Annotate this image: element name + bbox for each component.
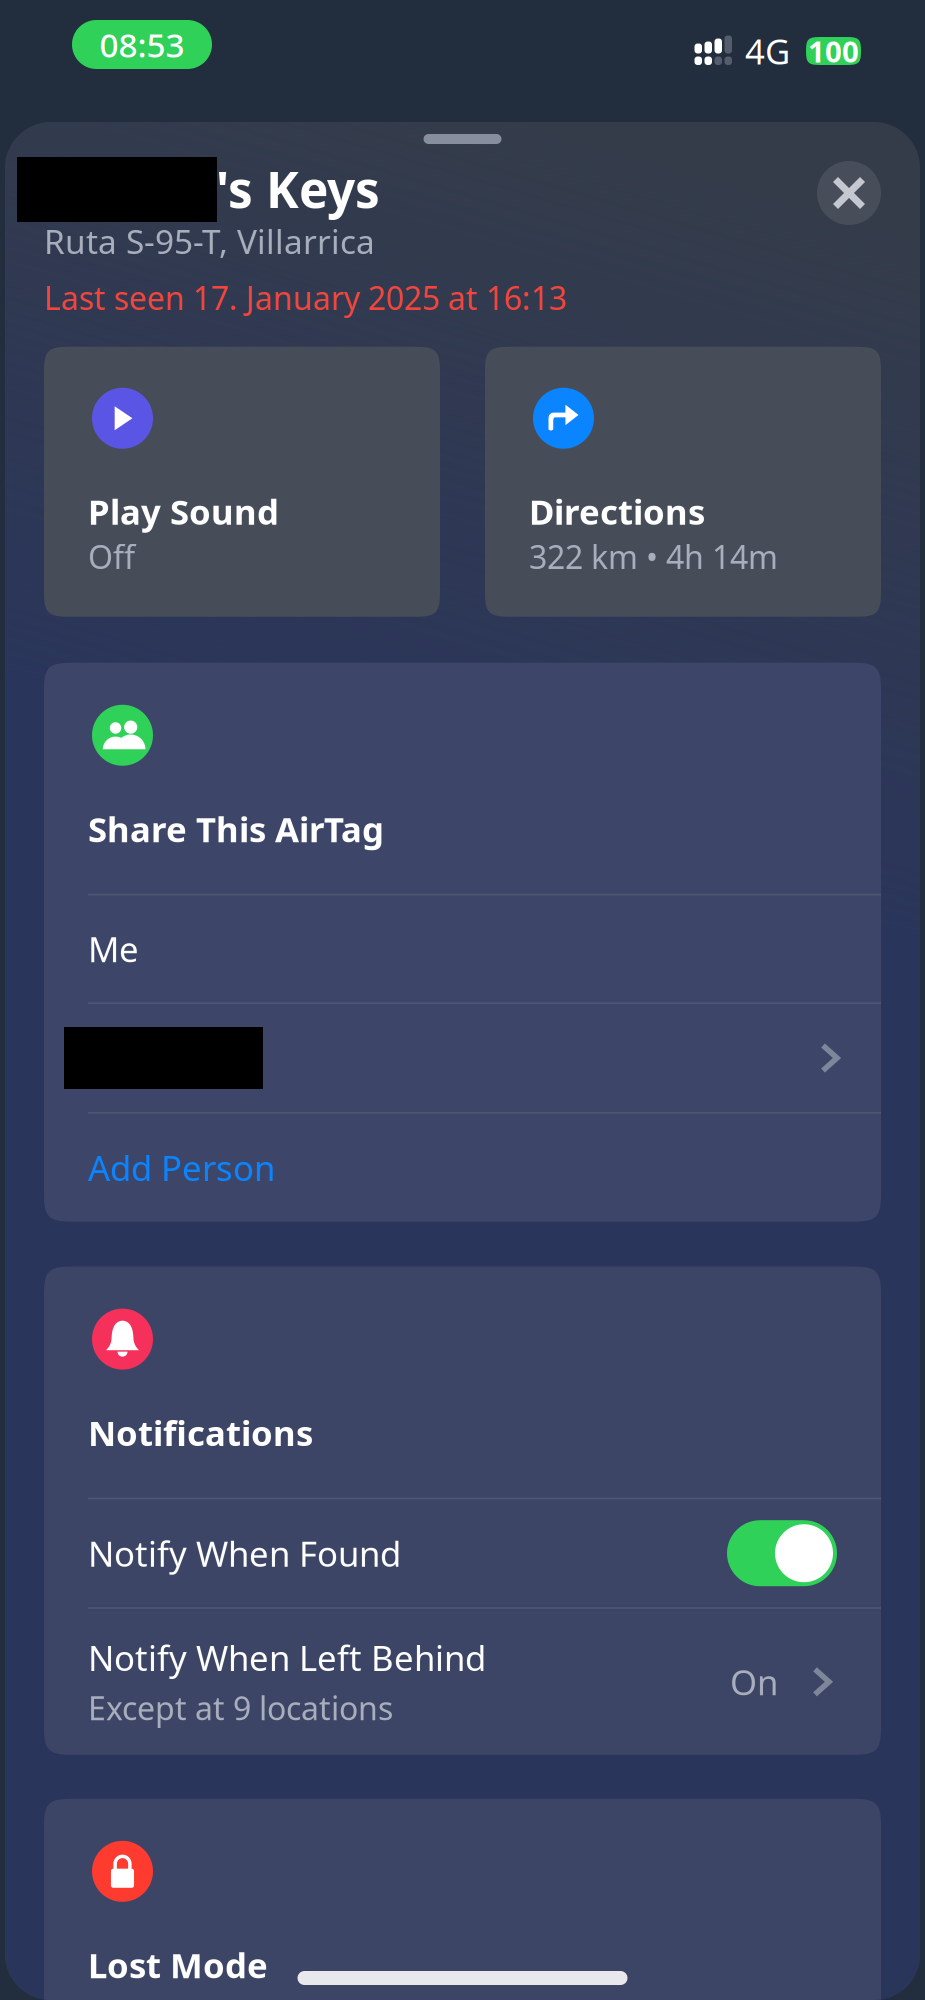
staticText: Share This AirTag — [88, 806, 384, 852]
button[interactable]: Close — [817, 161, 881, 225]
staticText: Last seen 17. January 2025 at 16:13 — [44, 276, 567, 319]
staticText: Lost Mode — [88, 1942, 268, 1988]
staticText: Notifications — [88, 1410, 313, 1456]
button[interactable]: Add Person — [44, 1114, 881, 1222]
staticText: Notify When Left Behind — [88, 1635, 486, 1681]
button[interactable]: Shared person — [44, 1004, 881, 1112]
staticText: Play Sound — [88, 488, 279, 534]
button[interactable]: Play Sound — [44, 347, 440, 617]
staticText: 's Keys — [216, 156, 380, 221]
button[interactable]: Notify When Left Behind — [44, 1609, 881, 1755]
staticText: Directions — [529, 488, 705, 534]
button[interactable]: Directions — [485, 347, 881, 617]
staticText: 4G — [745, 28, 790, 74]
staticText: Except at 9 locations — [88, 1687, 393, 1729]
button[interactable]: Me — [44, 895, 881, 1002]
staticText: 08:53 — [99, 22, 184, 67]
staticText: Off — [88, 535, 135, 578]
staticText: On — [730, 1659, 778, 1705]
staticText: Me — [88, 926, 139, 972]
staticText: Ruta S-95-T, Villarrica — [44, 219, 375, 263]
staticText: Notify When Found — [88, 1530, 401, 1576]
button[interactable]: Notify When Found — [44, 1499, 881, 1607]
staticText: 322 km • 4h 14m — [529, 535, 778, 578]
staticText: Add Person — [88, 1145, 275, 1191]
staticText: 100 — [808, 31, 859, 70]
